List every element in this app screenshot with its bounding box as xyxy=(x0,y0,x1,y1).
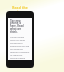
button[interactable]: Read the story xyxy=(10,6,30,14)
staticText: Lorem ipsum dolor sit amet consectetur a… xyxy=(10,36,30,60)
staticText: Read the story xyxy=(10,6,30,14)
staticText: The new phone is here. Read what we thin… xyxy=(10,19,24,34)
